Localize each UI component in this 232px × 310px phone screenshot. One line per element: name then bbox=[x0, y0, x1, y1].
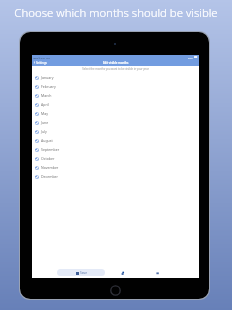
staticText: Edit visible months bbox=[103, 61, 129, 65]
staticText: Settings bbox=[36, 61, 47, 65]
staticText: Select the months you want to be visible… bbox=[32, 67, 199, 71]
staticText: February bbox=[41, 84, 56, 89]
button[interactable]: January bbox=[32, 73, 199, 82]
staticText: March bbox=[41, 93, 52, 98]
staticText: November bbox=[41, 165, 59, 170]
button[interactable]: June bbox=[32, 118, 199, 127]
staticText: June bbox=[41, 120, 49, 125]
button[interactable]: August bbox=[32, 136, 199, 145]
staticText: Choose which months should be visible bbox=[0, 5, 232, 21]
staticText: October bbox=[41, 156, 55, 161]
staticText: July bbox=[41, 129, 47, 134]
staticText: iPad ▾ 9:41 AM bbox=[33, 56, 50, 59]
button[interactable]: April bbox=[32, 100, 199, 109]
button[interactable]: Settings bbox=[32, 59, 199, 66]
button[interactable]: October bbox=[32, 154, 199, 163]
button[interactable]: Previous bbox=[119, 269, 127, 277]
button[interactable]: July bbox=[32, 127, 199, 136]
staticText: April bbox=[41, 102, 49, 107]
staticText: December bbox=[41, 174, 59, 179]
button[interactable]: March bbox=[32, 91, 199, 100]
staticText: January bbox=[41, 75, 54, 80]
button[interactable]: May bbox=[32, 109, 199, 118]
staticText: 87% bbox=[188, 56, 193, 59]
staticText: August bbox=[41, 138, 53, 143]
button[interactable]: Next bbox=[154, 269, 162, 277]
button[interactable]: December bbox=[32, 172, 199, 181]
button[interactable]: Save bbox=[57, 269, 105, 276]
button[interactable]: February bbox=[32, 82, 199, 91]
staticText: September bbox=[41, 147, 60, 152]
button[interactable]: September bbox=[32, 145, 199, 154]
button[interactable]: November bbox=[32, 163, 199, 172]
staticText: Save bbox=[80, 271, 87, 275]
staticText: May bbox=[41, 111, 48, 116]
